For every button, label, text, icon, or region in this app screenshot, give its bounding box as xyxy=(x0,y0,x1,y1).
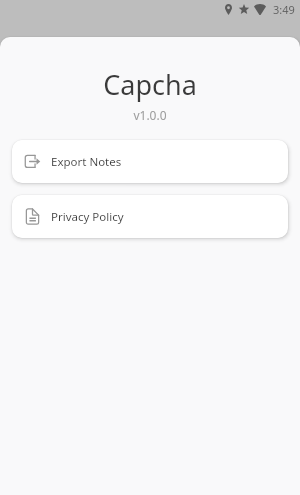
staticText: 3:49 xyxy=(273,2,295,17)
staticText: Capcha xyxy=(0,66,300,103)
staticText: Export Notes xyxy=(51,154,122,170)
staticText: Privacy Policy xyxy=(51,209,124,225)
button[interactable]: Export Notes xyxy=(12,140,288,183)
button[interactable]: Privacy Policy xyxy=(12,195,288,238)
staticText: v1.0.0 xyxy=(0,107,300,123)
